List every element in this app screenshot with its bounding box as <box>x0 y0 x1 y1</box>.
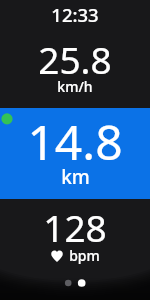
staticText: 12:33 <box>51 2 99 27</box>
button[interactable]: 25.8 <box>0 30 150 104</box>
other: GPS locked <box>0 108 150 199</box>
button[interactable]: Page 1 <box>64 275 74 285</box>
staticText: 14.8 <box>27 109 123 174</box>
staticText: km <box>61 164 90 190</box>
staticText: 25.8 <box>38 34 112 84</box>
other: Heart rate <box>51 248 63 264</box>
button[interactable]: 14.8 <box>0 108 150 199</box>
button[interactable]: 128 <box>0 200 150 266</box>
staticText: 128 <box>43 202 107 252</box>
button[interactable]: Page 2, selected <box>77 275 87 285</box>
staticText: km/h <box>57 77 93 96</box>
staticText: bpm <box>69 246 100 265</box>
